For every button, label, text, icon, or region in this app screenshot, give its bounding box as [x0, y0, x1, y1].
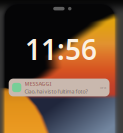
staticText: 11:56: [25, 30, 97, 68]
button[interactable]: MESSAGGI: [9, 79, 109, 96]
staticText: MESSAGGI: [24, 80, 51, 87]
staticText: ora: [100, 85, 106, 90]
staticText: Ciao, hai visto l'ultima foto?: [24, 88, 87, 95]
